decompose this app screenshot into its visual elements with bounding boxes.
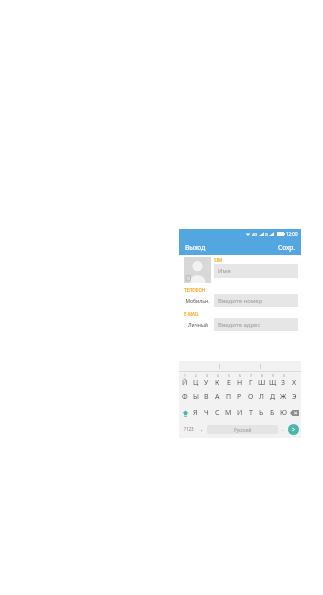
button[interactable]: 2 (190, 373, 201, 389)
staticText: Введите адрес (218, 321, 261, 329)
button[interactable]: Мобильн. (184, 295, 211, 307)
staticText: С (215, 408, 220, 418)
button[interactable]: О (245, 389, 256, 405)
staticText: Д (270, 392, 276, 402)
button[interactable]: Ы (190, 389, 201, 405)
button[interactable]: Shift (180, 405, 190, 421)
button[interactable]: С (212, 405, 223, 421)
button[interactable]: Backspace (289, 405, 300, 421)
button[interactable]: 0 (278, 373, 289, 389)
staticText: Е (227, 378, 231, 388)
button[interactable]: ?123 (181, 421, 197, 437)
button[interactable]: Д (267, 389, 278, 405)
button[interactable]: 6 (234, 373, 245, 389)
button[interactable]: . (278, 421, 288, 437)
button[interactable]: Л (256, 389, 267, 405)
staticText: Имя (218, 267, 231, 275)
staticText: З (281, 378, 286, 388)
staticText: ТЕЛЕФОН (184, 287, 206, 293)
staticText: . (282, 425, 284, 433)
staticText: Ч (204, 408, 209, 418)
staticText: Й (182, 378, 188, 388)
staticText: 2 (195, 374, 197, 378)
button[interactable]: А (212, 389, 223, 405)
button[interactable]: Введите номер (214, 294, 298, 307)
button[interactable]: Русский (207, 425, 278, 434)
staticText: , (201, 425, 203, 433)
button[interactable]: 7 (245, 373, 256, 389)
button[interactable]: Х (289, 373, 300, 389)
button[interactable]: Добавить фото (184, 257, 211, 283)
button[interactable]: Ь (256, 405, 267, 421)
staticText: E-MAIL (184, 311, 200, 317)
staticText: G (265, 232, 268, 237)
staticText: Щ (269, 378, 277, 388)
staticText: 8 (261, 374, 263, 378)
button[interactable]: 8 (256, 373, 267, 389)
staticText: Выход (185, 243, 206, 252)
button[interactable]: Э (289, 389, 300, 405)
staticText: 4G (252, 232, 258, 237)
button[interactable]: Имя (214, 264, 298, 278)
staticText: В (204, 392, 209, 402)
staticText: Э (292, 392, 297, 402)
button[interactable]: П (223, 389, 234, 405)
staticText: Я (193, 408, 198, 418)
staticText: Л (259, 392, 264, 402)
staticText: Б (270, 408, 275, 418)
staticText: Введите номер (218, 297, 263, 305)
staticText: Г (249, 378, 253, 388)
button[interactable]: М (223, 405, 234, 421)
button[interactable]: В (201, 389, 212, 405)
staticText: Ы (193, 392, 199, 402)
button[interactable]: Я (190, 405, 201, 421)
staticText: Ю (280, 408, 287, 418)
button[interactable]: Выход (179, 240, 212, 255)
button[interactable]: Сохр. (272, 240, 301, 255)
staticText: SIM (214, 257, 223, 263)
staticText: Ж (280, 392, 287, 402)
staticText: Н (237, 378, 243, 388)
button[interactable]: Enter (288, 424, 299, 435)
staticText: 5 (228, 374, 230, 378)
button[interactable]: 5 (223, 373, 234, 389)
staticText: Ф (182, 392, 188, 402)
button[interactable]: 3 (201, 373, 212, 389)
button[interactable]: Ю (278, 405, 289, 421)
staticText: 7 (250, 374, 252, 378)
staticText: 6 (239, 374, 241, 378)
button[interactable]: Ф (180, 389, 190, 405)
button[interactable]: Т (245, 405, 256, 421)
button[interactable]: 4 (212, 373, 223, 389)
staticText: ?123 (184, 426, 194, 432)
button[interactable]: И (234, 405, 245, 421)
staticText: У (204, 378, 209, 388)
staticText: 12:00 (286, 231, 298, 237)
button[interactable]: Введите адрес (214, 318, 298, 331)
button[interactable]: , (197, 421, 207, 437)
staticText: Личный (188, 322, 208, 329)
staticText: 0 (283, 374, 285, 378)
button[interactable]: Личный (184, 319, 211, 331)
staticText: 4 (217, 374, 219, 378)
button[interactable]: Ж (278, 389, 289, 405)
staticText: Русский (234, 427, 252, 433)
staticText: Т (249, 408, 253, 418)
staticText: О (248, 392, 254, 402)
staticText: Р (237, 392, 242, 402)
staticText: И (237, 408, 243, 418)
staticText: М (225, 408, 232, 418)
button[interactable]: Ч (201, 405, 212, 421)
button[interactable]: Р (234, 389, 245, 405)
staticText: К (215, 378, 220, 388)
staticText: 3 (206, 374, 208, 378)
button[interactable]: 1 (180, 373, 190, 389)
button[interactable]: Б (267, 405, 278, 421)
staticText: П (226, 392, 232, 402)
button[interactable]: 9 (267, 373, 278, 389)
staticText: Ь (259, 408, 264, 418)
staticText: Сохр. (278, 243, 295, 252)
